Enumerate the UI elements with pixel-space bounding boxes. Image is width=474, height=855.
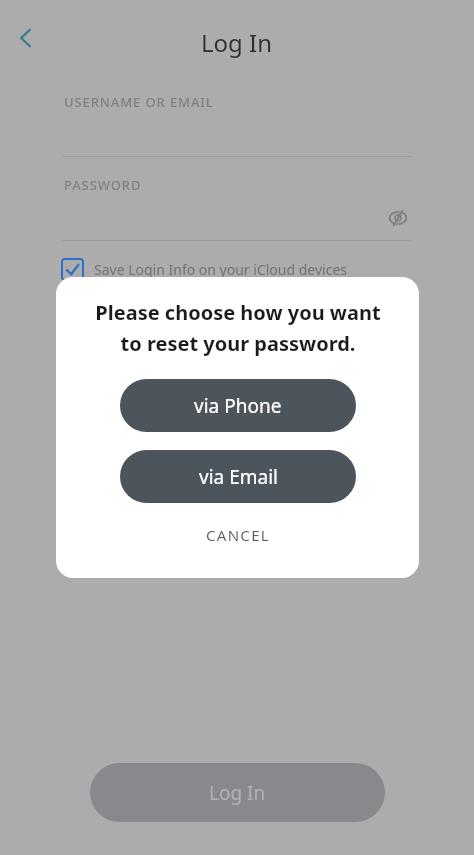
button[interactable]: via Email xyxy=(120,450,356,503)
button[interactable]: Save Login Info on your iCloud devices xyxy=(62,259,347,280)
staticText: USERNAME OR EMAIL xyxy=(64,93,214,111)
staticText: via Email xyxy=(199,464,278,490)
button[interactable]: via Phone xyxy=(120,379,356,432)
staticText: Log In xyxy=(209,780,266,806)
button[interactable]: Log In xyxy=(90,763,385,822)
button[interactable]: Show password xyxy=(380,200,416,236)
staticText: PASSWORD xyxy=(64,176,142,194)
staticText: via Phone xyxy=(194,393,282,419)
button[interactable]: CANCEL xyxy=(120,517,356,553)
staticText: Please choose how you want to reset your… xyxy=(95,299,381,357)
staticText: Save Login Info on your iCloud devices xyxy=(94,260,347,279)
button[interactable]: Back xyxy=(4,16,48,60)
staticText: CANCEL xyxy=(206,525,270,545)
staticText: Log In xyxy=(201,26,273,59)
